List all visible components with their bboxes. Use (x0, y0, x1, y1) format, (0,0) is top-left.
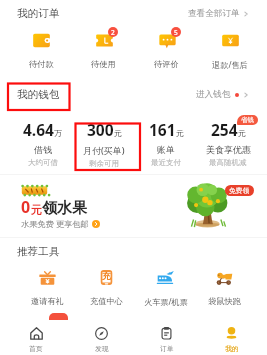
button[interactable]: 待评价 (135, 31, 198, 69)
staticText: 元 (114, 128, 122, 138)
staticText: 订单 (160, 344, 174, 353)
staticText: 161 (149, 119, 176, 140)
staticText: 邀请有礼 (31, 296, 64, 306)
staticText: 账单 (157, 144, 175, 155)
staticText: 进入钱包 (196, 89, 231, 100)
button[interactable]: 退款售后 (198, 31, 261, 70)
staticText: 借钱 (34, 144, 52, 155)
button[interactable]: 254 (197, 119, 259, 167)
staticText: 万 (54, 128, 62, 138)
button[interactable]: 161 (135, 119, 197, 167)
staticText: 元 (176, 128, 184, 138)
staticText: 火车票/机票 (144, 296, 188, 307)
other: 袋鼠快跑 (216, 269, 233, 286)
staticText: 5 (174, 28, 178, 37)
staticText: 待付款 (29, 59, 54, 69)
staticText: 水果免费 更享包邮 (21, 218, 89, 229)
other: 邀请有礼 (39, 269, 56, 286)
other: 退款售后 (222, 32, 239, 49)
staticText: 最高随机减 (209, 158, 247, 167)
button[interactable]: 我的钱包 (0, 82, 267, 106)
staticText: 2 (111, 28, 115, 37)
staticText: 大约可借 (28, 158, 58, 167)
staticText: 推荐工具 (17, 245, 60, 258)
staticText: 免费领 (229, 186, 250, 195)
button[interactable]: 袋鼠快跑 (195, 268, 254, 306)
button[interactable]: 300 (73, 119, 135, 168)
staticText: 袋鼠快跑 (208, 296, 241, 306)
button[interactable]: 待付款 (10, 31, 72, 69)
button[interactable]: 进入钱包 (196, 89, 249, 100)
staticText: 充 (102, 271, 111, 282)
staticText: 元 (31, 203, 42, 217)
button[interactable]: 邀请有礼 (17, 268, 77, 306)
staticText: 最近支付 (151, 158, 181, 167)
staticText: 省钱 (241, 116, 254, 124)
staticText: 待使用 (91, 59, 116, 69)
staticText: 254 (211, 119, 238, 140)
staticText: 月付(买单) (83, 144, 125, 156)
staticText: 剩余可用 (89, 159, 119, 168)
staticText: 0 (21, 196, 31, 218)
staticText: 查看全部订单 (188, 8, 240, 19)
staticText: 4.64 (23, 119, 54, 140)
staticText: 我的钱包 (17, 88, 60, 101)
button[interactable]: 4.64 (12, 119, 73, 167)
button[interactable]: 充值中心 (77, 268, 136, 306)
button[interactable]: 我的订单 (0, 0, 267, 26)
button[interactable]: 火车票机票 (136, 268, 195, 307)
staticText: 首页 (29, 344, 43, 353)
button[interactable]: 我的 (199, 319, 264, 355)
other: 待评价 (159, 32, 176, 49)
button[interactable]: 首页 (3, 319, 69, 355)
other: 待使用 (96, 32, 113, 49)
staticText: 我的订单 (17, 7, 60, 20)
staticText: 发现 (95, 344, 109, 353)
staticText: 充值中心 (90, 296, 123, 306)
staticText: 退款/售后 (212, 59, 248, 70)
other: 火车票机票 (157, 269, 174, 286)
button[interactable]: 待使用 (72, 31, 135, 69)
staticText: 待评价 (154, 59, 179, 69)
button[interactable]: 发现 (69, 319, 134, 355)
other: 待付款 (33, 32, 50, 49)
other: 充值中心 (98, 269, 115, 286)
staticText: 美食享优惠 (206, 144, 251, 155)
button[interactable]: 0 (0, 175, 267, 237)
staticText: 元 (238, 128, 246, 138)
staticText: 领水果 (42, 199, 87, 218)
staticText: 300 (87, 119, 114, 140)
button[interactable]: 订单 (134, 319, 199, 355)
staticText: 我的 (225, 344, 239, 353)
button[interactable]: 查看全部订单 (188, 8, 249, 19)
